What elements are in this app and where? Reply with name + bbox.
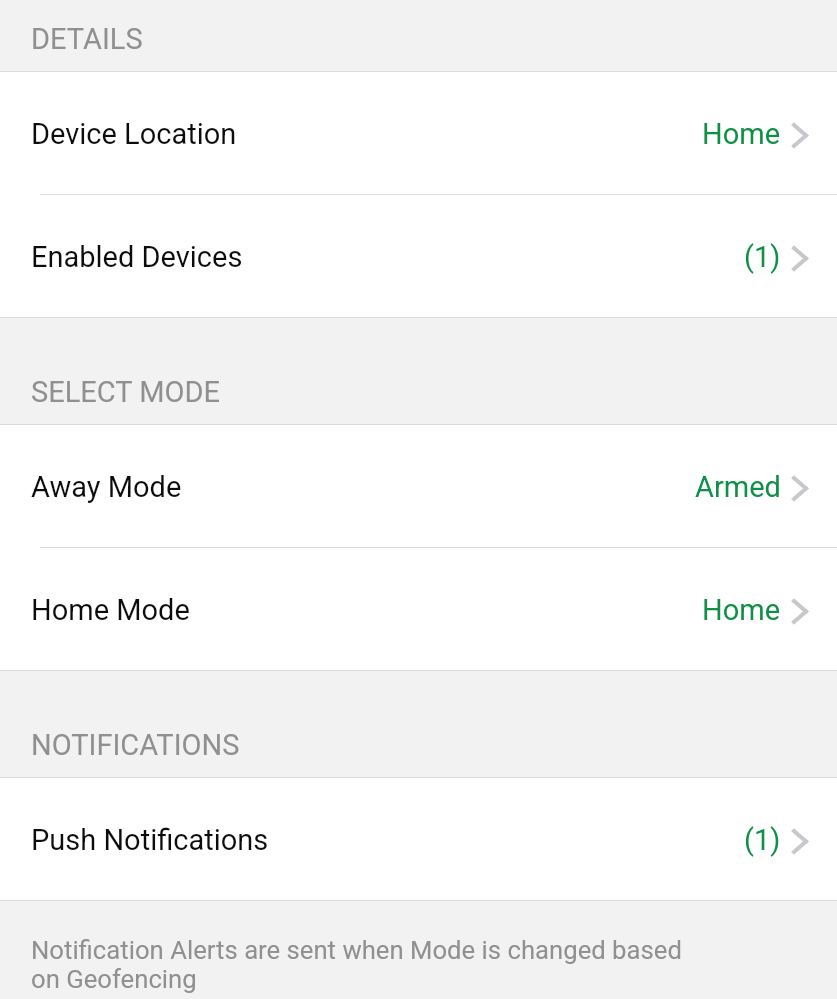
- other: Open: [792, 599, 808, 624]
- staticText: Home: [702, 117, 781, 151]
- other: Open: [792, 123, 808, 148]
- staticText: Home: [702, 593, 781, 627]
- button[interactable]: Enabled Devices: [0, 195, 837, 318]
- staticText: (1): [744, 823, 781, 857]
- other: Open: [792, 476, 808, 501]
- staticText: Away Mode: [31, 470, 182, 504]
- button[interactable]: Away Mode: [0, 425, 837, 548]
- staticText: DETAILS: [31, 22, 143, 56]
- button[interactable]: Push Notifications: [0, 778, 837, 901]
- button[interactable]: Home Mode: [0, 548, 837, 671]
- other: Open: [792, 246, 808, 271]
- staticText: (1): [744, 240, 781, 274]
- staticText: Armed: [695, 470, 781, 504]
- staticText: Device Location: [31, 117, 237, 151]
- staticText: SELECT MODE: [31, 375, 220, 409]
- staticText: NOTIFICATIONS: [31, 728, 240, 762]
- staticText: Notification Alerts are sent when Mode i…: [31, 936, 697, 994]
- staticText: Home Mode: [31, 593, 190, 627]
- other: Open: [792, 829, 808, 854]
- button[interactable]: Device Location: [0, 72, 837, 195]
- staticText: Enabled Devices: [31, 240, 243, 274]
- staticText: Push Notifications: [31, 823, 269, 857]
